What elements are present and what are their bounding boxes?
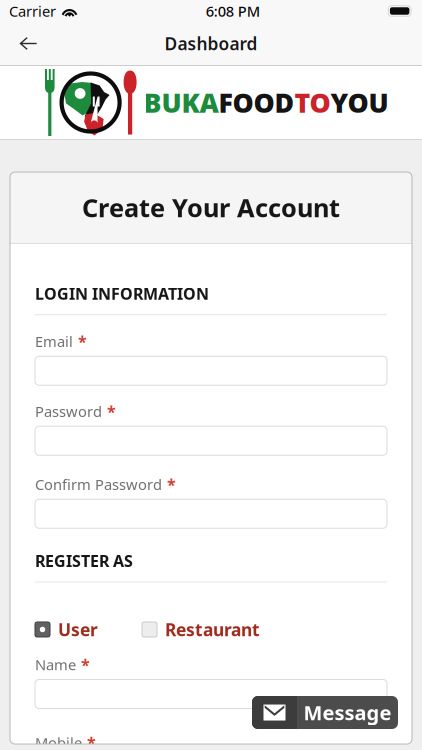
staticText: Carrier [9, 1, 56, 21]
staticText: Name [35, 655, 76, 674]
button[interactable]: Back [0, 22, 56, 65]
staticText: BUKA [144, 85, 219, 120]
staticText: Password [35, 401, 102, 421]
staticText: REGISTER AS [35, 550, 133, 571]
staticText: Message [303, 699, 391, 726]
staticText: Email [35, 331, 73, 351]
staticText: LOGIN INFORMATION [35, 283, 209, 304]
button[interactable]: User [35, 618, 98, 641]
staticText: * [78, 331, 87, 352]
staticText: TO [295, 85, 331, 120]
staticText: User [58, 618, 98, 641]
staticText: * [167, 474, 176, 495]
staticText: * [81, 654, 90, 675]
staticText: Confirm Password [35, 474, 162, 494]
staticText: Create Your Account [82, 191, 340, 224]
staticText: Mobile [35, 733, 82, 750]
staticText: Dashboard [164, 32, 257, 55]
staticText: FOOD [219, 85, 295, 120]
staticText: * [107, 401, 116, 422]
staticText: Restaurant [165, 618, 260, 641]
button[interactable]: Restaurant [142, 618, 260, 641]
staticText: 6:08 PM [206, 1, 260, 21]
button[interactable]: Message [252, 696, 398, 729]
staticText: * [87, 732, 96, 750]
staticText: YOU [331, 85, 389, 120]
